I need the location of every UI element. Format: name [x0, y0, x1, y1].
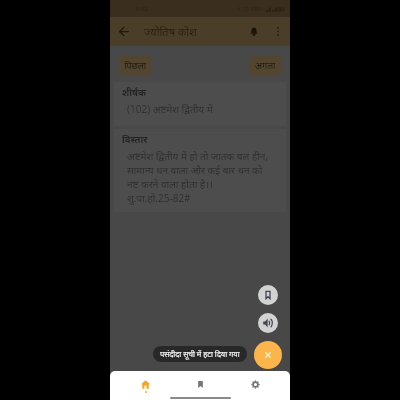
staticText: पसंदीदा सूची में हटा दिया गया	[160, 349, 240, 359]
staticText: विस्तार	[122, 133, 148, 146]
button[interactable]: More options	[270, 17, 286, 46]
staticText: अगला	[255, 59, 276, 71]
button[interactable]: Close menu	[254, 341, 282, 369]
staticText: ज्योतिष कोश	[144, 24, 197, 39]
staticText: पिछला	[124, 59, 147, 71]
button[interactable]: Bookmarks	[179, 371, 221, 398]
button[interactable]: Home	[124, 371, 166, 398]
button[interactable]: अगला	[249, 55, 281, 75]
button[interactable]: शीर्षक	[114, 82, 286, 126]
staticText: अष्टमेश द्वितीय में हो तो जातक बल हीन, स…	[127, 149, 273, 205]
button[interactable]: पिछला	[120, 55, 151, 75]
button[interactable]: Settings	[234, 371, 276, 398]
staticText: (102) अष्टमेश द्वितीय में	[127, 102, 213, 116]
staticText: शीर्षक	[122, 86, 146, 99]
button[interactable]: Notifications	[244, 17, 264, 46]
button[interactable]: विस्तार	[114, 129, 286, 212]
button[interactable]: Read aloud	[258, 313, 278, 333]
button[interactable]: Back	[110, 17, 138, 46]
button[interactable]: Bookmark	[258, 285, 278, 305]
